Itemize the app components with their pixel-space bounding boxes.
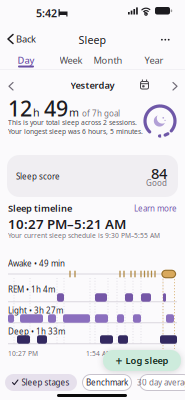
button[interactable] xyxy=(5,78,17,94)
button[interactable]: Back xyxy=(4,29,40,49)
staticText: 10:27 PM–5:21 AM xyxy=(8,215,126,233)
staticText: Sleep stages xyxy=(21,377,69,388)
staticText: 84 xyxy=(151,163,167,183)
staticText: 1:54 AM xyxy=(86,349,112,358)
button[interactable]: + xyxy=(103,350,181,371)
button[interactable] xyxy=(137,76,152,92)
staticText: Benchmark xyxy=(86,377,128,388)
staticText: Your current sleep schedule is 9:30 PM–5… xyxy=(8,231,160,240)
staticText: 49 xyxy=(44,94,68,122)
staticText: Light • 3h 27m xyxy=(8,305,63,316)
button[interactable]: Day xyxy=(3,54,49,66)
staticText: Year xyxy=(144,54,163,66)
staticText: 5:42 xyxy=(36,6,57,20)
button[interactable]: Benchmark xyxy=(82,374,132,391)
staticText: 12 xyxy=(8,94,32,122)
staticText: Day xyxy=(17,54,34,66)
staticText: h xyxy=(33,105,43,119)
button[interactable]: Week xyxy=(48,54,94,66)
staticText: Week xyxy=(59,54,82,66)
button[interactable]: Sleep stages xyxy=(5,374,77,391)
button[interactable] xyxy=(156,34,175,46)
staticText: 10:27 PM xyxy=(8,349,38,358)
staticText: Good xyxy=(146,177,167,188)
staticText: Back xyxy=(16,33,36,45)
staticText: Sleep xyxy=(78,33,106,47)
staticText: Awake • 49 min xyxy=(8,258,65,269)
staticText: + xyxy=(115,352,122,368)
button[interactable]: Year xyxy=(131,54,177,66)
staticText: This is your total sleep across 2 sessio… xyxy=(8,118,137,127)
staticText: REM • 1h 4m xyxy=(8,284,55,295)
button[interactable]: Learn more xyxy=(0,203,177,214)
staticText: Log sleep xyxy=(125,354,168,367)
staticText: 30 day average xyxy=(137,377,185,388)
button[interactable]: 30 day average xyxy=(137,374,185,391)
staticText: Deep • 1h 33m xyxy=(8,326,65,337)
staticText: Learn more xyxy=(134,203,177,214)
staticText: Yesterday xyxy=(70,79,114,91)
button[interactable]: Yesterday xyxy=(0,79,185,91)
button[interactable]: Month xyxy=(85,54,131,66)
button[interactable] xyxy=(169,78,181,94)
button[interactable]: Sleep score xyxy=(7,155,178,197)
staticText: Sleep score xyxy=(16,171,60,182)
staticText: Your longest sleep was 6 hours, 5 minute… xyxy=(8,127,143,136)
staticText: Sleep timeline xyxy=(8,202,72,214)
staticText: of 7h goal xyxy=(80,108,120,119)
staticText: m xyxy=(69,105,79,119)
staticText: Month xyxy=(93,54,122,66)
